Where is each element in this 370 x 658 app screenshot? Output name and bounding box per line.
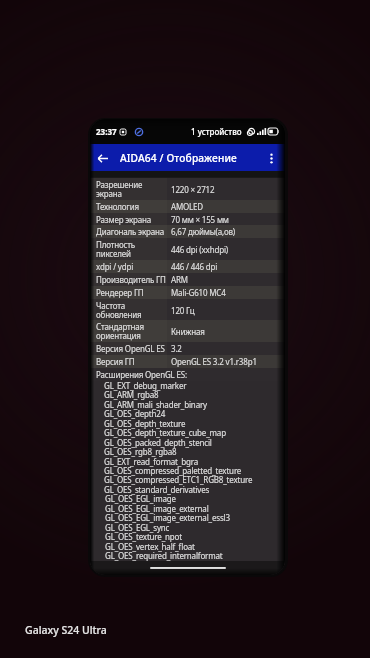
button[interactable]: Back — [93, 149, 111, 167]
staticText: 23:37 — [96, 126, 117, 137]
staticText: 446 / 446 dpi — [171, 261, 218, 272]
button[interactable]: Расширения OpenGL ES: — [96, 368, 285, 381]
staticText: GL_OES_EGL_image_external — [105, 503, 209, 514]
staticText: GL_OES_required_internalformat — [105, 550, 223, 561]
staticText: GL_OES_rgb8_rgba8 — [104, 446, 177, 457]
button[interactable]: Производитель ГП — [90, 273, 285, 286]
staticText: GL_ARM_mali_shader_binary — [104, 399, 207, 410]
staticText: 120 Гц — [171, 305, 195, 316]
staticText: GL_OES_vertex_half_float — [105, 541, 195, 552]
staticText: GL_OES_EGL_image_external_essl3 — [105, 512, 230, 523]
button[interactable]: Рендерер ГП — [90, 286, 285, 299]
staticText: Расширения OpenGL ES: — [96, 369, 187, 380]
staticText: 6,67 дюймы(а,ов) — [171, 226, 236, 237]
staticText: Mali-G610 MC4 — [171, 287, 226, 298]
staticText: GL_OES_EGL_sync — [105, 522, 170, 533]
staticText: OpenGL ES 3.2 v1.r38p1 — [171, 356, 257, 367]
staticText: 70 мм × 155 мм — [171, 214, 229, 225]
button[interactable]: More options — [263, 150, 279, 166]
staticText: GL_OES_compressed_paletted_texture — [104, 465, 242, 476]
staticText: GL_OES_standard_derivatives — [104, 484, 210, 495]
staticText: Разрешение экрана — [96, 179, 143, 200]
staticText: Рендерер ГП — [96, 287, 144, 298]
button[interactable]: Размер экрана — [90, 213, 285, 226]
staticText: Технология — [96, 201, 139, 212]
button[interactable]: xdpi / ydpi — [90, 260, 285, 273]
button[interactable]: Плотность пикселей — [90, 238, 285, 260]
staticText: xdpi / ydpi — [96, 261, 134, 272]
staticText: GL_OES_depth24 — [104, 408, 166, 419]
staticText: 1220 × 2712 — [171, 184, 215, 195]
staticText: GL_OES_packed_depth_stencil — [104, 437, 212, 448]
staticText: AMOLED — [171, 201, 204, 212]
button[interactable]: Диагональ экрана — [90, 225, 285, 238]
staticText: Версия ГП — [96, 356, 135, 367]
staticText: ARM — [171, 274, 188, 285]
staticText: GL_OES_EGL_image — [105, 493, 176, 504]
button[interactable]: Частота обновления — [90, 299, 285, 321]
button[interactable]: Версия OpenGL ES — [90, 342, 285, 355]
staticText: Частота обновления — [96, 300, 142, 321]
staticText: 446 dpi (xxhdpi) — [171, 244, 229, 255]
staticText: GL_EXT_debug_marker — [104, 380, 187, 391]
staticText: GL_ARM_rgba8 — [104, 389, 159, 400]
button[interactable]: Технология — [90, 200, 285, 213]
button[interactable]: Разрешение экрана — [90, 178, 285, 200]
staticText: 3.2 — [171, 343, 182, 354]
staticText: GL_OES_depth_texture — [104, 418, 186, 429]
staticText: 1 устройство — [191, 126, 242, 137]
staticText: GL_OES_depth_texture_cube_map — [104, 427, 226, 438]
staticText: Производитель ГП — [96, 274, 166, 285]
staticText: AIDA64 / Отображение — [120, 151, 237, 165]
staticText: Книжная — [171, 326, 205, 337]
staticText: Диагональ экрана — [96, 226, 164, 237]
staticText: GL_OES_compressed_ETC1_RGB8_texture — [104, 474, 253, 485]
staticText: Плотность пикселей — [96, 239, 136, 260]
staticText: GL_OES_texture_npot — [105, 531, 182, 542]
staticText: Стандартная ориентация — [96, 321, 145, 342]
staticText: GL_EXT_read_format_bgra — [104, 456, 198, 467]
button[interactable]: Стандартная ориентация — [90, 320, 285, 342]
staticText: Galaxy S24 Ultra — [25, 623, 107, 637]
staticText: Версия OpenGL ES — [96, 343, 165, 354]
staticText: Размер экрана — [96, 214, 152, 225]
button[interactable]: Версия ГП — [90, 355, 285, 368]
